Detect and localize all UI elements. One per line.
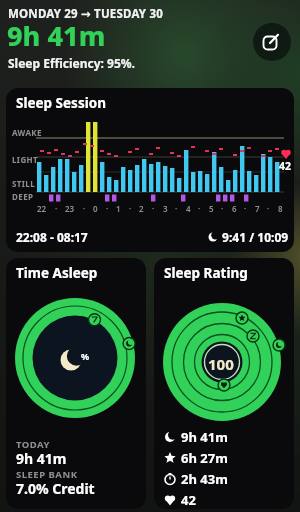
staticText: 42: [181, 491, 196, 509]
button[interactable]: Time Asleep: [6, 258, 146, 509]
staticText: 22: [37, 203, 47, 214]
staticText: ·: [267, 203, 270, 214]
staticText: 7.0% Credit: [16, 479, 95, 498]
staticText: SLEEP BANK: [16, 468, 78, 481]
staticText: 9:41 / 10:09: [219, 229, 289, 245]
staticText: 6h 27m: [181, 449, 228, 467]
staticText: 9h 41m: [7, 17, 106, 54]
staticText: Time Asleep: [16, 264, 98, 282]
staticText: Sleep Efficiency: 95%.: [8, 55, 135, 71]
staticText: ·: [244, 203, 247, 214]
staticText: 7: [255, 203, 260, 214]
staticText: %: [81, 350, 90, 362]
staticText: ·: [106, 203, 109, 214]
staticText: 5: [209, 203, 214, 214]
staticText: 9h 41m: [16, 449, 67, 468]
staticText: 6: [232, 203, 237, 214]
staticText: ·: [55, 203, 58, 214]
staticText: ·: [221, 203, 224, 214]
staticText: STILL: [12, 178, 36, 189]
staticText: Sleep Rating: [164, 264, 248, 282]
staticText: AWAKE: [12, 127, 42, 138]
staticText: DEEP: [12, 191, 34, 202]
staticText: 8: [278, 203, 283, 214]
staticText: 23: [65, 203, 75, 214]
staticText: Sleep Session: [16, 94, 106, 112]
staticText: ·: [175, 203, 178, 214]
staticText: 1: [116, 203, 121, 214]
staticText: 3: [163, 203, 168, 214]
staticText: 9h 41m: [181, 428, 228, 446]
staticText: TODAY: [16, 438, 51, 451]
button[interactable]: [253, 23, 291, 61]
staticText: ·: [198, 203, 201, 214]
staticText: ·: [83, 203, 86, 214]
staticText: 2: [139, 203, 144, 214]
staticText: 2h 43m: [181, 470, 228, 488]
staticText: 22:08 - 08:17: [16, 229, 88, 245]
staticText: 100: [208, 354, 234, 374]
staticText: LIGHT: [12, 154, 39, 165]
staticText: ·: [152, 203, 155, 214]
staticText: MONDAY 29 → TUESDAY 30: [8, 6, 164, 22]
button[interactable]: Sleep Session: [6, 88, 294, 252]
staticText: 0: [93, 203, 98, 214]
staticText: 4: [186, 203, 191, 214]
staticText: ·: [129, 203, 132, 214]
staticText: 42: [279, 159, 292, 173]
button[interactable]: Sleep Rating: [154, 258, 294, 509]
